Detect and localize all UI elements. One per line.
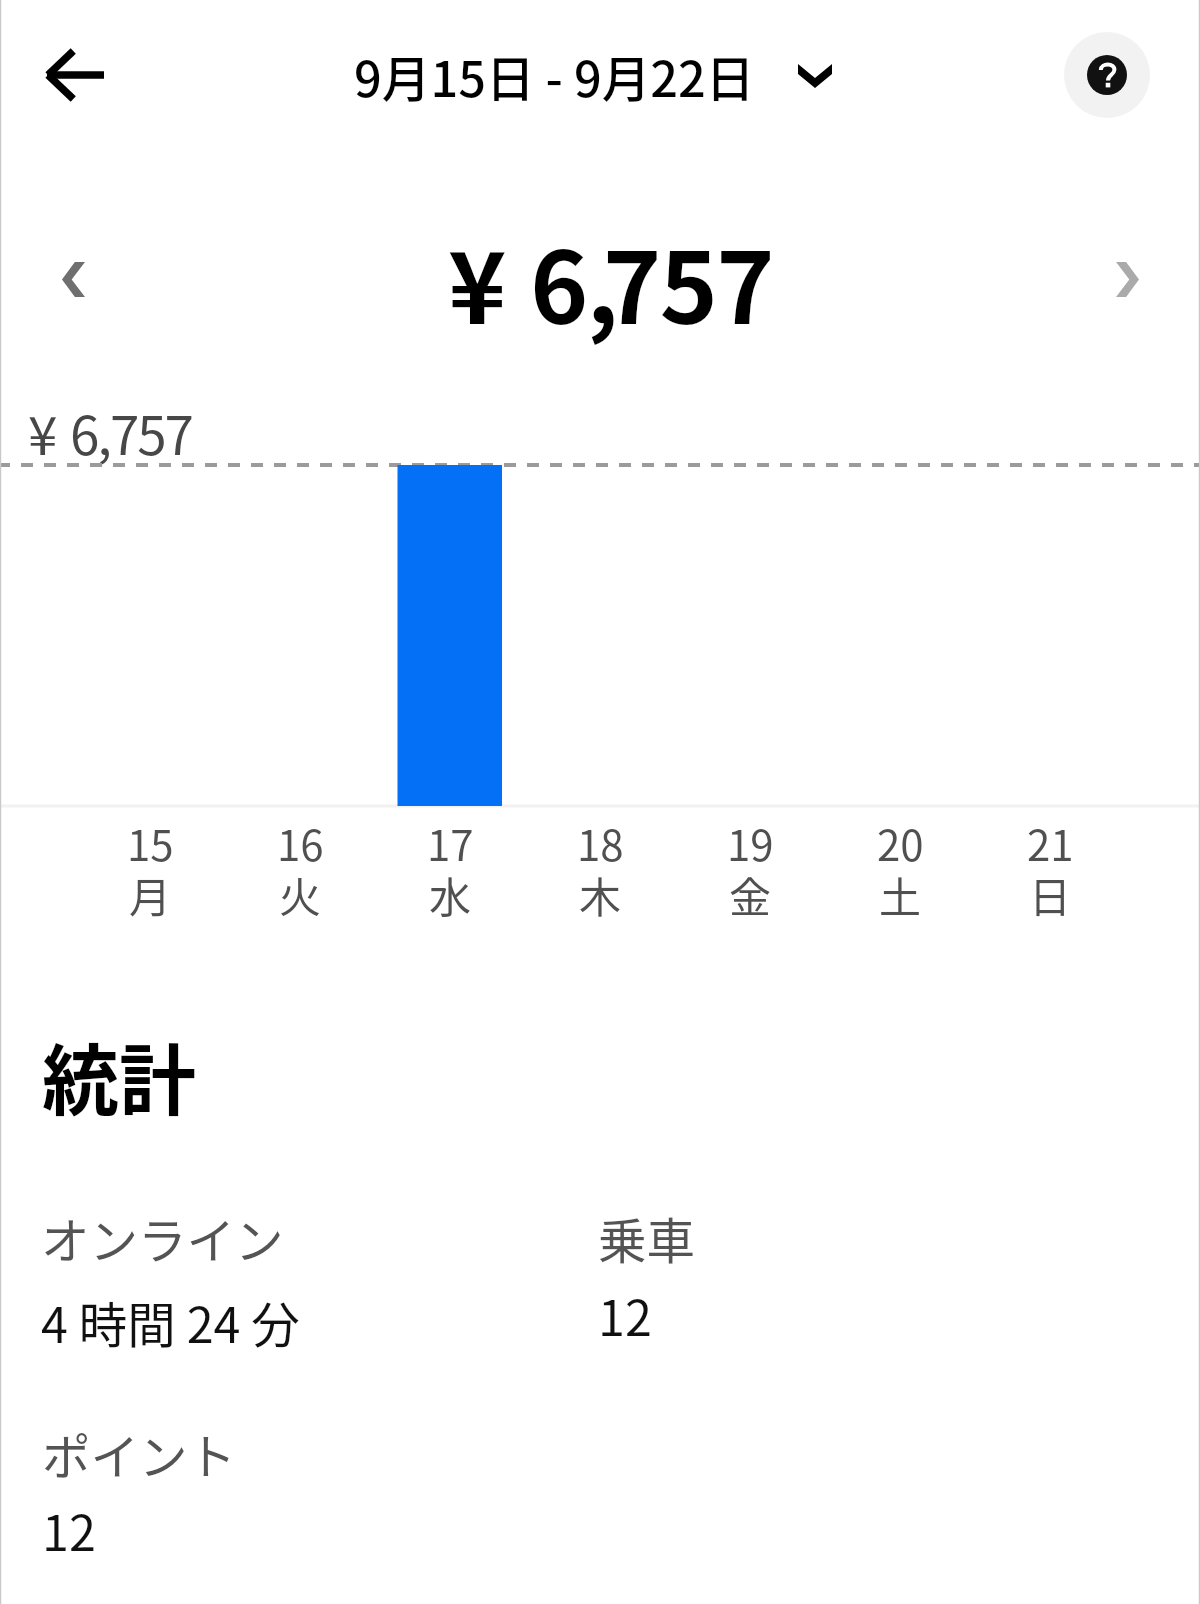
staticText: ポイント — [42, 1419, 237, 1489]
staticText: 日 — [1029, 864, 1072, 917]
staticText: ¥ — [448, 209, 507, 352]
button[interactable]: 19 — [675, 466, 825, 926]
button[interactable]: Help — [1064, 32, 1150, 118]
staticText: 17 — [427, 812, 474, 873]
staticText: 土 — [879, 864, 922, 917]
staticText: 水 — [429, 864, 472, 917]
staticText: 6, — [530, 209, 617, 352]
staticText: 16 — [277, 812, 324, 873]
staticText: 12 — [598, 1280, 652, 1350]
button[interactable]: 15 — [75, 466, 225, 926]
staticText: オンライン — [41, 1203, 284, 1273]
staticText: 乗車 — [598, 1203, 696, 1273]
staticText: 15 — [127, 812, 174, 873]
staticText: 金 — [729, 864, 772, 917]
staticText: 9月15日 - 9月22日 — [354, 41, 755, 112]
button[interactable]: 21 — [975, 466, 1125, 926]
button[interactable]: 18 — [525, 466, 675, 926]
staticText: 12 — [42, 1495, 96, 1565]
staticText: 6,757 — [70, 394, 192, 471]
staticText: 火 — [279, 864, 322, 917]
staticText: 19 — [727, 812, 774, 873]
button[interactable]: Back — [23, 23, 127, 127]
button[interactable]: Next week — [1087, 249, 1167, 309]
staticText: 木 — [579, 864, 622, 917]
staticText: 21 — [1027, 812, 1074, 873]
staticText: ¥ — [28, 394, 58, 471]
button[interactable]: Previous week — [33, 249, 113, 309]
staticText: 757 — [603, 209, 773, 352]
button[interactable]: 9月15日 - 9月22日 — [354, 23, 832, 129]
button[interactable]: 16 — [225, 466, 375, 926]
staticText: 20 — [877, 812, 924, 873]
staticText: 月 — [129, 864, 172, 917]
button[interactable]: 17 — [375, 466, 525, 926]
staticText: 統計 — [42, 1020, 196, 1131]
staticText: 18 — [577, 812, 624, 873]
button[interactable]: 20 — [825, 466, 975, 926]
staticText: 4 時間 24 分 — [41, 1287, 300, 1357]
